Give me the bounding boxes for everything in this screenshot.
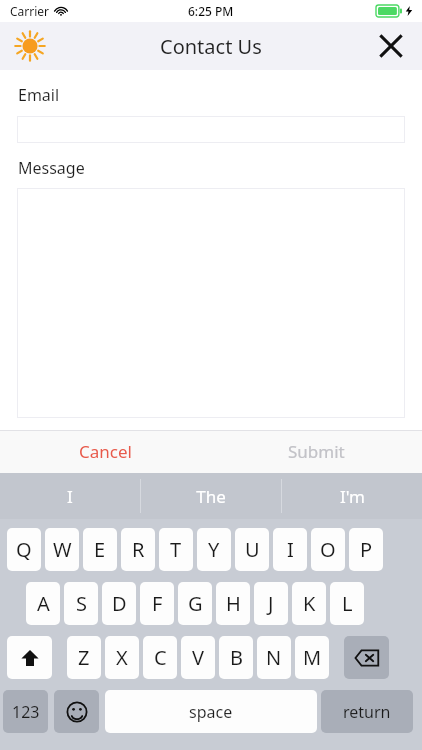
staticText: V — [192, 644, 204, 671]
staticText: L — [342, 590, 353, 617]
button[interactable]: Cancel — [0, 430, 211, 473]
staticText: The — [196, 485, 226, 508]
button[interactable]: O — [311, 528, 345, 571]
staticText: K — [303, 590, 316, 617]
button[interactable]: C — [143, 636, 177, 679]
button[interactable]: P — [349, 528, 383, 571]
button[interactable]: I'm — [282, 473, 422, 519]
staticText: M — [303, 644, 322, 671]
button[interactable]: I — [0, 473, 140, 519]
staticText: T — [170, 536, 182, 563]
staticText: W — [53, 536, 72, 563]
staticText: Submit — [288, 440, 345, 463]
staticText: O — [320, 536, 336, 563]
staticText: Message — [18, 157, 85, 179]
button[interactable]: T — [159, 528, 193, 571]
staticText: space — [189, 701, 233, 723]
staticText: E — [94, 536, 106, 563]
button[interactable]: B — [219, 636, 253, 679]
staticText: H — [226, 590, 241, 617]
staticText: 123 — [12, 701, 40, 723]
button[interactable]: Y — [197, 528, 231, 571]
button[interactable]: X — [105, 636, 139, 679]
staticText: return — [343, 701, 391, 723]
button[interactable]: The — [141, 473, 281, 519]
button[interactable]: N — [257, 636, 291, 679]
button[interactable]: Z — [67, 636, 101, 679]
button[interactable]: Backspace — [344, 636, 389, 679]
button[interactable]: A — [26, 582, 60, 625]
staticText: A — [37, 590, 50, 617]
staticText: I'm — [340, 485, 365, 508]
staticText: D — [112, 590, 127, 617]
button[interactable]: D — [102, 582, 136, 625]
staticText: F — [152, 590, 163, 617]
staticText: Y — [208, 536, 220, 563]
button[interactable]: return — [321, 690, 413, 733]
staticText: Carrier — [10, 3, 50, 19]
staticText: G — [188, 590, 203, 617]
button[interactable]: App icon — [14, 30, 46, 62]
staticText: B — [230, 644, 243, 671]
staticText: S — [76, 590, 87, 617]
button[interactable]: F — [140, 582, 174, 625]
button[interactable]: R — [121, 528, 155, 571]
button[interactable]: Close — [374, 29, 408, 63]
button[interactable]: 123 — [3, 690, 48, 733]
staticText: I — [67, 485, 73, 508]
button[interactable]: Emoji — [54, 690, 99, 733]
button[interactable]: Q — [7, 528, 41, 571]
staticText: C — [154, 644, 167, 671]
button[interactable]: I — [273, 528, 307, 571]
staticText: I — [287, 536, 294, 563]
button[interactable]: Submit — [211, 430, 422, 473]
staticText: 6:25 PM — [188, 3, 234, 19]
staticText: Z — [78, 644, 90, 671]
button[interactable]: G — [178, 582, 212, 625]
staticText: Q — [16, 536, 32, 563]
button[interactable]: L — [330, 582, 364, 625]
staticText: U — [245, 536, 260, 563]
staticText: P — [360, 536, 373, 563]
staticText: N — [266, 644, 282, 671]
button[interactable]: K — [292, 582, 326, 625]
button[interactable]: W — [45, 528, 79, 571]
button[interactable]: H — [216, 582, 250, 625]
button[interactable]: M — [295, 636, 329, 679]
staticText: Contact Us — [160, 33, 262, 60]
button[interactable]: J — [254, 582, 288, 625]
button[interactable] — [17, 116, 405, 143]
button[interactable]: space — [105, 690, 317, 733]
staticText: R — [132, 536, 145, 563]
staticText: X — [116, 644, 128, 671]
button[interactable]: U — [235, 528, 269, 571]
staticText: Cancel — [79, 440, 132, 463]
button[interactable]: S — [64, 582, 98, 625]
staticText: Email — [18, 84, 60, 106]
button[interactable]: V — [181, 636, 215, 679]
button[interactable]: E — [83, 528, 117, 571]
button[interactable]: Shift — [7, 636, 52, 679]
staticText: J — [268, 590, 274, 617]
